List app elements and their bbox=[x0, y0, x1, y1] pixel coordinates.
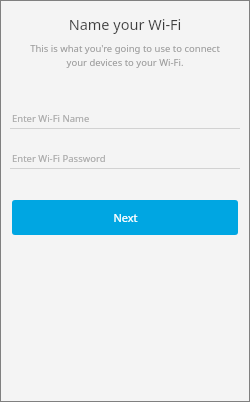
button[interactable]: Enter Wi-Fi Password bbox=[10, 149, 240, 169]
staticText: This is what you're going to use to conn… bbox=[18, 42, 232, 69]
staticText: Enter Wi-Fi Name bbox=[12, 112, 90, 125]
staticText: Name your Wi-Fi bbox=[0, 14, 250, 34]
button[interactable]: Next bbox=[12, 200, 238, 235]
staticText: Enter Wi-Fi Password bbox=[12, 152, 106, 165]
button[interactable]: Enter Wi-Fi Name bbox=[10, 109, 240, 129]
staticText: Next bbox=[113, 210, 138, 225]
